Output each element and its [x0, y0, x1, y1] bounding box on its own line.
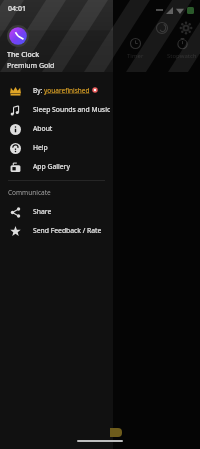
- button[interactable]: About: [0, 119, 113, 138]
- button[interactable]: Timer: [114, 38, 156, 66]
- staticText: By:: [33, 86, 44, 95]
- staticText: Premium Gold: [7, 61, 55, 71]
- button[interactable]: By:: [0, 80, 113, 100]
- button[interactable]: Help: [0, 138, 113, 157]
- button[interactable]: Settings: [176, 18, 196, 38]
- button[interactable]: Stopwatch: [158, 38, 200, 66]
- staticText: App Gallery: [33, 162, 70, 171]
- staticText: 04:01: [8, 4, 26, 14]
- staticText: Timer: [127, 52, 144, 60]
- button[interactable]: Sleep Sounds and Music: [0, 100, 113, 119]
- staticText: youarefinished: [44, 86, 90, 95]
- staticText: The Clock: [7, 50, 40, 60]
- button[interactable]: Drawer handle: [110, 428, 122, 437]
- staticText: Help: [33, 143, 48, 152]
- staticText: Communicate: [8, 188, 51, 197]
- button[interactable]: App Gallery: [0, 157, 113, 176]
- staticText: About: [33, 124, 53, 133]
- staticText: Sleep Sounds and Music: [33, 105, 111, 114]
- staticText: Stopwatch: [167, 52, 197, 60]
- button[interactable]: Share: [0, 202, 113, 221]
- button[interactable]: Bedtime: [152, 18, 172, 38]
- staticText: Send Feedback / Rate: [33, 226, 102, 235]
- staticText: Share: [33, 207, 52, 216]
- button[interactable]: Send Feedback / Rate: [0, 221, 113, 240]
